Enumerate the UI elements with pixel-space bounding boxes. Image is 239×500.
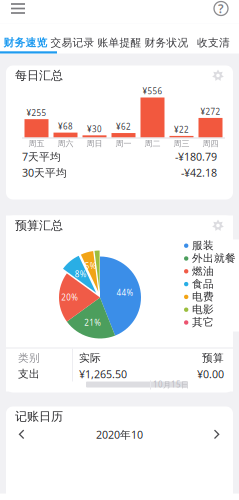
staticText: 周三 [173, 139, 189, 148]
staticText: 实际 [79, 351, 101, 364]
staticText: 财务状况 [144, 36, 188, 49]
button[interactable]: Previous month [10, 426, 34, 442]
staticText: ¥556 [142, 86, 162, 96]
staticText: 预算 [202, 351, 224, 364]
staticText: 收支清 [197, 36, 230, 49]
staticText: ¥272 [200, 106, 220, 117]
staticText: -¥180.79 [175, 149, 217, 164]
staticText: 每日汇总 [15, 68, 63, 83]
staticText: 交易记录 [50, 36, 94, 49]
staticText: ? [218, 0, 224, 16]
staticText: 5% [85, 261, 97, 271]
button[interactable]: 财务速览 [2, 34, 49, 51]
button[interactable]: Help [205, 0, 237, 23]
button[interactable]: Settings [212, 219, 224, 231]
staticText: 44% [116, 287, 133, 298]
staticText: ¥0.00 [197, 367, 224, 381]
button[interactable]: Menu [2, 0, 34, 23]
staticText: 周日 [86, 139, 102, 148]
staticText: 电影 [192, 303, 214, 316]
staticText: ¥22 [174, 124, 189, 135]
staticText: 电费 [192, 290, 214, 303]
staticText: 20% [61, 292, 78, 303]
staticText: 周四 [202, 139, 218, 148]
button[interactable]: Settings [212, 69, 224, 81]
staticText: 类别 [18, 351, 40, 364]
staticText: 服装 [192, 239, 214, 252]
button[interactable]: 收支清 [190, 34, 237, 51]
staticText: ¥255 [26, 107, 46, 118]
staticText: -¥42.18 [181, 165, 217, 180]
staticText: 2020年10 [96, 427, 143, 442]
staticText: 燃油 [192, 264, 214, 278]
button[interactable]: 账单提醒 [96, 34, 143, 51]
staticText: 30天平均 [22, 165, 67, 180]
staticText: 周一 [115, 139, 131, 148]
button[interactable]: 财务状况 [143, 34, 190, 51]
staticText: 周二 [144, 139, 160, 148]
staticText: 财务速览 [3, 36, 47, 49]
staticText: ¥68 [58, 121, 73, 132]
staticText: 其它 [192, 316, 214, 329]
staticText: 支出 [18, 367, 40, 380]
staticText: 食品 [192, 277, 214, 290]
staticText: 周六 [57, 139, 73, 148]
staticText: 21% [84, 317, 101, 328]
staticText: 外出就餐 [192, 252, 236, 265]
staticText: 记账日历 [15, 409, 63, 424]
button[interactable]: Next month [205, 426, 229, 442]
staticText: ¥62 [116, 121, 131, 132]
staticText: 7天平均 [22, 149, 61, 164]
staticText: 8% [75, 269, 87, 279]
staticText: ¥1,265.50 [79, 367, 127, 381]
staticText: 账单提醒 [97, 36, 141, 49]
button[interactable]: 交易记录 [49, 34, 96, 51]
staticText: ¥30 [87, 124, 102, 134]
staticText: 周五 [28, 139, 44, 148]
staticText: 预算汇总 [15, 218, 63, 233]
staticText: 10月15日 [153, 379, 189, 390]
